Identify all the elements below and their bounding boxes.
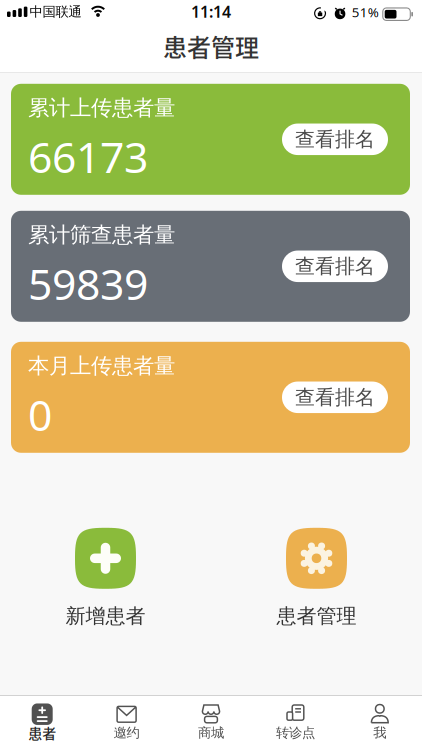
button[interactable]: 新增患者 — [65, 528, 145, 628]
button[interactable]: 查看排名 — [282, 382, 388, 413]
staticText: 66173 — [28, 128, 148, 185]
staticText: 中国联通 — [29, 4, 81, 20]
staticText: 商城 — [198, 724, 224, 741]
staticText: 本月上传患者量 — [28, 353, 175, 379]
staticText: 累计筛查患者量 — [28, 222, 175, 248]
staticText: 患者 — [28, 723, 56, 743]
staticText: 0 — [28, 386, 52, 443]
button[interactable]: 转诊点 — [253, 703, 338, 739]
button[interactable]: 患者 — [0, 703, 84, 739]
staticText: 我 — [373, 724, 386, 741]
button[interactable]: 患者管理 — [276, 528, 356, 628]
staticText: 累计上传患者量 — [28, 95, 175, 121]
staticText: 患者管理 — [163, 29, 259, 63]
button[interactable]: 邀约 — [84, 703, 169, 739]
staticText: 查看排名 — [295, 385, 375, 410]
button[interactable]: 商城 — [169, 703, 253, 739]
staticText: 邀约 — [114, 724, 140, 741]
staticText: 查看排名 — [295, 254, 375, 279]
button[interactable]: 我 — [338, 703, 422, 739]
staticText: 51% — [352, 3, 379, 21]
button[interactable]: 查看排名 — [282, 251, 388, 282]
staticText: 查看排名 — [295, 127, 375, 152]
staticText: 新增患者 — [65, 604, 145, 628]
staticText: 患者管理 — [276, 604, 356, 628]
button[interactable]: 查看排名 — [282, 123, 388, 155]
staticText: 59839 — [28, 255, 148, 312]
staticText: 转诊点 — [276, 724, 315, 741]
staticText: 11:14 — [191, 1, 231, 22]
